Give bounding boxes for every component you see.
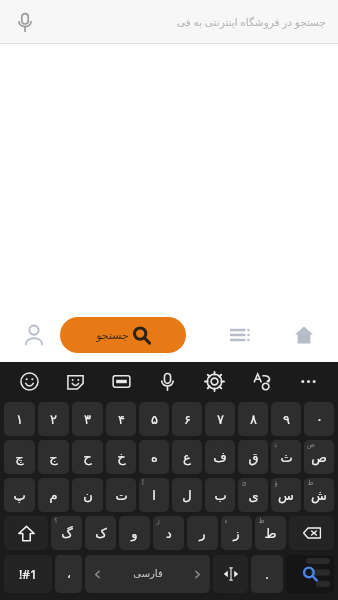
button[interactable]: م	[38, 478, 69, 512]
button[interactable]: Search	[286, 555, 334, 593]
button[interactable]: ک	[85, 516, 116, 550]
button[interactable]: ز	[221, 516, 252, 550]
button[interactable]: و	[119, 516, 150, 550]
staticText: ل	[182, 488, 192, 503]
button[interactable]: ،	[55, 555, 82, 593]
staticText: م	[49, 488, 58, 503]
button[interactable]: ۱	[4, 402, 35, 436]
staticText: س	[278, 488, 294, 503]
button[interactable]: Home	[278, 311, 330, 359]
button[interactable]: جستجو	[60, 317, 186, 353]
staticText: آ	[142, 479, 144, 487]
button[interactable]: Voice search	[0, 0, 338, 44]
button[interactable]: GIF	[98, 364, 144, 398]
staticText: ف	[213, 450, 227, 465]
button[interactable]: ن	[72, 478, 103, 512]
staticText: ش	[311, 488, 327, 503]
staticText: ء	[224, 517, 228, 525]
staticText: ج	[49, 450, 58, 465]
button[interactable]: Settings	[191, 364, 238, 398]
button[interactable]: Categories	[214, 311, 266, 359]
staticText: ۰	[316, 412, 323, 427]
button[interactable]: ف	[205, 440, 235, 474]
staticText: ۵	[151, 412, 158, 427]
button[interactable]: گ	[51, 516, 82, 550]
button[interactable]: Stickers	[52, 364, 98, 398]
staticText: گ	[61, 526, 73, 541]
staticText: ۳	[84, 412, 91, 427]
button[interactable]: ۶	[172, 402, 202, 436]
staticText: ن	[83, 488, 93, 503]
staticText: پ	[13, 488, 26, 503]
button[interactable]: Translate	[238, 364, 285, 398]
button[interactable]: ر	[187, 516, 218, 550]
button[interactable]: Voice input	[144, 364, 191, 398]
staticText: چ	[15, 450, 24, 465]
button[interactable]: ت	[106, 478, 136, 512]
staticText: ق	[248, 450, 259, 465]
button[interactable]: ۲	[38, 402, 69, 436]
button[interactable]: Backspace	[289, 516, 334, 550]
staticText: ئ	[241, 479, 247, 487]
staticText: ۸	[250, 412, 257, 427]
button[interactable]: Space, Persian	[85, 555, 210, 593]
staticText: ه	[151, 450, 158, 465]
staticText: جستجو در فروشگاه اینترنتی به فی	[177, 15, 326, 29]
button[interactable]: خ	[106, 440, 136, 474]
button[interactable]: ه	[139, 440, 169, 474]
staticText: ض	[307, 441, 315, 449]
staticText: ط	[264, 526, 277, 541]
button[interactable]: ث	[271, 440, 301, 474]
button[interactable]: ۳	[72, 402, 103, 436]
staticText: ی	[248, 488, 259, 503]
button[interactable]: ص	[304, 440, 334, 474]
button[interactable]: More	[285, 364, 332, 398]
staticText: ص	[311, 450, 327, 465]
button[interactable]: Move cursor	[213, 555, 248, 593]
button[interactable]: ی	[238, 478, 268, 512]
staticText: ،	[67, 567, 71, 581]
button[interactable]: Emoji	[6, 364, 52, 398]
staticText: ت	[115, 488, 128, 503]
button[interactable]: ج	[38, 440, 69, 474]
button[interactable]: .	[251, 555, 283, 593]
staticText: جستجو	[96, 329, 129, 342]
button[interactable]: ۰	[304, 402, 334, 436]
staticText: خ	[117, 450, 126, 465]
staticText: ۱	[16, 412, 23, 427]
staticText: ؟	[54, 517, 58, 525]
staticText: ث	[280, 450, 293, 465]
button[interactable]: ۴	[106, 402, 136, 436]
button[interactable]: ع	[172, 440, 202, 474]
button[interactable]: ا	[139, 478, 169, 512]
button[interactable]: ۸	[238, 402, 268, 436]
staticText: ا	[152, 488, 156, 503]
button[interactable]: ق	[238, 440, 268, 474]
staticText: ع	[183, 450, 191, 465]
button[interactable]: ۷	[205, 402, 235, 436]
staticText: ظ	[258, 517, 265, 525]
button[interactable]: ۵	[139, 402, 169, 436]
button[interactable]: Profile	[8, 311, 60, 359]
button[interactable]: س	[271, 478, 301, 512]
staticText: ۶	[184, 412, 191, 427]
button[interactable]: ش	[304, 478, 334, 512]
button[interactable]: ح	[72, 440, 103, 474]
button[interactable]: Shift	[4, 516, 48, 550]
button[interactable]: د	[153, 516, 184, 550]
button[interactable]: پ	[4, 478, 35, 512]
button[interactable]: ب	[205, 478, 235, 512]
staticText: ز	[233, 526, 240, 541]
button[interactable]: Voice search	[12, 9, 38, 35]
button[interactable]: ۹	[271, 402, 301, 436]
staticText: ژ	[156, 517, 160, 525]
button[interactable]: !#1	[4, 555, 52, 593]
button[interactable]: چ	[4, 440, 35, 474]
staticText: ۹	[283, 412, 290, 427]
button[interactable]: ط	[255, 516, 286, 550]
button[interactable]: ل	[172, 478, 202, 512]
staticText: فارسی	[133, 568, 163, 580]
staticText: ر	[199, 526, 206, 541]
staticText: !#1	[19, 566, 37, 582]
staticText: ک	[95, 526, 107, 541]
